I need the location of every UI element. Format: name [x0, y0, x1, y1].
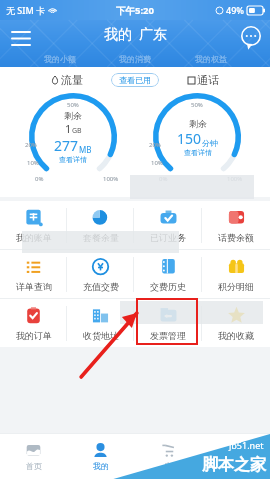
button[interactable]: 我的收藏	[202, 299, 270, 347]
button[interactable]: 话费余额	[202, 201, 270, 249]
staticText: 1	[65, 121, 72, 136]
staticText: 150	[177, 129, 202, 148]
staticText: 查看详情	[59, 155, 87, 164]
button[interactable]: 查看已用	[111, 73, 159, 87]
staticText: 我的收藏	[218, 330, 254, 341]
button[interactable]: 店	[134, 433, 202, 479]
staticText: 店	[164, 461, 172, 471]
button[interactable]: 我的订单	[0, 299, 67, 347]
staticText: 分钟	[202, 138, 218, 148]
staticText: 查看已用	[119, 75, 151, 85]
staticText: 首页	[26, 461, 42, 471]
staticText: 20%	[149, 141, 161, 149]
staticText: 积分明细	[218, 281, 254, 292]
staticText: 49%	[226, 4, 244, 16]
staticText: 交费历史	[150, 281, 186, 292]
staticText: 100%	[103, 175, 119, 183]
staticText: 套餐余量	[83, 232, 119, 243]
staticText: 通话	[197, 73, 219, 87]
staticText: 详单查询	[16, 281, 52, 292]
staticText: 10%	[27, 159, 39, 167]
staticText: 50%	[67, 101, 79, 109]
button[interactable]: Menu	[6, 23, 36, 53]
staticText: MB	[79, 144, 92, 155]
button[interactable]: 我的	[67, 433, 134, 479]
button[interactable]: 交费历史	[134, 250, 202, 298]
button[interactable]: Messages	[237, 23, 265, 51]
staticText: 发票管理	[150, 330, 186, 341]
staticText: 无 SIM 卡	[6, 4, 46, 16]
staticText: 我的订单	[16, 330, 52, 341]
button[interactable]: 我的账单	[0, 201, 67, 249]
staticText: 0%	[35, 175, 44, 183]
staticText: 收货地址	[83, 330, 119, 341]
staticText: jb51.net	[229, 439, 264, 451]
staticText: 10%	[151, 159, 163, 167]
button[interactable]: 详单查询	[0, 250, 67, 298]
staticText: 流量	[61, 73, 83, 87]
staticText: 已订业务	[150, 232, 186, 243]
staticText: 充值交费	[83, 281, 119, 292]
button[interactable]: 收货地址	[67, 299, 134, 347]
staticText: 我的小额	[44, 54, 76, 64]
staticText: GB	[72, 126, 82, 136]
staticText: 我的账单	[16, 232, 52, 243]
staticText: 查看详情	[184, 148, 212, 157]
button[interactable]: 已订业务	[134, 201, 202, 249]
staticText: 广东	[139, 26, 167, 44]
staticText: 剩余	[189, 118, 207, 129]
staticText: 我的消费	[119, 54, 151, 64]
button[interactable]: 首页	[0, 433, 67, 479]
staticText: 我的	[93, 461, 109, 471]
button[interactable]: 充值交费	[67, 250, 134, 298]
staticText: 我的权益	[195, 54, 227, 64]
button[interactable]: 查看详情	[184, 148, 212, 157]
staticText: 剩余	[64, 110, 82, 121]
button[interactable]: 查看详情	[59, 155, 87, 164]
staticText: 话费余额	[218, 232, 254, 243]
button[interactable]: 套餐余量	[67, 201, 134, 249]
staticText: 脚本之家	[202, 455, 266, 475]
button[interactable]: 积分明细	[202, 250, 270, 298]
staticText: 下午5:20	[116, 4, 154, 17]
staticText: 0%	[159, 175, 168, 183]
button[interactable]: 发票管理	[134, 299, 202, 347]
staticText: 277	[54, 136, 79, 155]
staticText: 20%	[25, 141, 37, 149]
staticText: 50%	[191, 101, 203, 109]
staticText: 我的	[104, 26, 132, 44]
button[interactable]: 我的	[104, 26, 167, 44]
staticText: 100%	[227, 175, 243, 183]
